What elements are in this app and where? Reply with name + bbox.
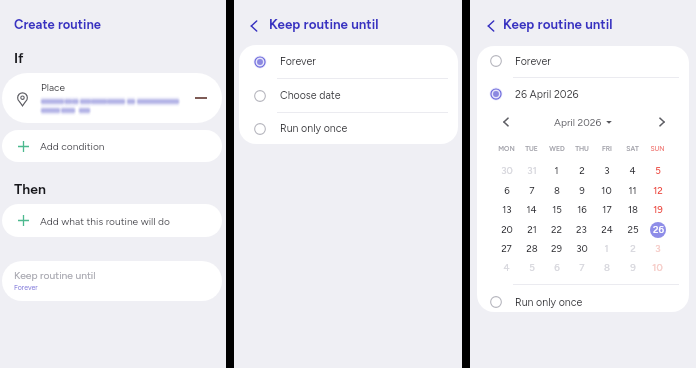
staticText: 26 April 2026 xyxy=(515,88,579,101)
staticText: FRI xyxy=(602,145,612,153)
staticText: 23 xyxy=(576,224,587,236)
staticText: 8 xyxy=(604,262,610,274)
staticText: THU xyxy=(575,145,589,153)
staticText: 10 xyxy=(601,185,612,197)
button[interactable]: 26 April 2026 xyxy=(477,78,689,110)
button[interactable]: Forever xyxy=(239,45,458,78)
staticText: Keep routine until xyxy=(269,16,379,32)
staticText: Keep routine until xyxy=(14,269,96,281)
staticText: 5 xyxy=(655,165,661,177)
staticText: 6 xyxy=(504,185,510,197)
staticText: Run only once xyxy=(515,296,583,309)
staticText: Add condition xyxy=(40,140,105,152)
button[interactable]: Previous month xyxy=(499,115,513,129)
staticText: 7 xyxy=(529,185,535,197)
staticText: 6 xyxy=(554,262,560,274)
button[interactable]: Back xyxy=(482,17,500,35)
staticText: 17 xyxy=(602,204,612,216)
staticText: 8 xyxy=(554,185,560,197)
staticText: Keep routine until xyxy=(503,16,613,32)
staticText: 4 xyxy=(503,262,510,274)
staticText: 22 xyxy=(551,224,562,236)
staticText: 4 xyxy=(629,165,636,177)
staticText: 11 xyxy=(628,185,637,197)
staticText: 27 xyxy=(501,243,512,255)
staticText: Then xyxy=(14,181,46,198)
staticText: Forever xyxy=(14,283,38,291)
staticText: 24 xyxy=(601,224,613,236)
staticText: WED xyxy=(549,145,565,153)
staticText: 26 xyxy=(653,224,664,236)
button[interactable]: Choose date xyxy=(239,79,458,112)
staticText: 15 xyxy=(552,204,562,216)
staticText: 1 xyxy=(554,165,559,177)
button[interactable]: Next month xyxy=(655,115,669,129)
staticText: Forever xyxy=(515,55,551,68)
button[interactable]: Run only once xyxy=(477,288,689,312)
button[interactable]: Add condition xyxy=(2,130,222,162)
staticText: 29 xyxy=(551,243,562,255)
button[interactable]: Back xyxy=(245,17,263,35)
staticText: Place xyxy=(41,81,65,93)
staticText: 5 xyxy=(529,262,535,274)
staticText: Forever xyxy=(280,55,316,68)
staticText: 2 xyxy=(630,243,636,255)
staticText: 3 xyxy=(604,165,610,177)
staticText: 13 xyxy=(502,204,512,216)
staticText: 16 xyxy=(577,204,587,216)
staticText: 31 xyxy=(527,165,537,177)
button[interactable]: Remove condition xyxy=(191,88,211,108)
button[interactable]: Forever xyxy=(477,46,689,76)
button[interactable]: Add what this routine will do xyxy=(2,204,222,237)
button[interactable]: Place xyxy=(2,73,222,123)
staticText: April 2026 xyxy=(554,116,602,128)
staticText: 9 xyxy=(630,262,636,274)
button[interactable]: Run only once xyxy=(239,113,458,144)
staticText: Run only once xyxy=(280,122,348,135)
staticText: MON xyxy=(498,145,515,153)
staticText: 21 xyxy=(527,224,537,236)
staticText: 2 xyxy=(579,165,585,177)
staticText: If xyxy=(14,50,24,67)
staticText: 25 xyxy=(627,224,639,236)
staticText: 10 xyxy=(652,262,663,274)
staticText: 3 xyxy=(655,243,661,255)
staticText: TUE xyxy=(525,145,538,153)
staticText: 20 xyxy=(501,224,513,236)
staticText: 18 xyxy=(628,204,638,216)
staticText: 30 xyxy=(576,243,588,255)
staticText: 7 xyxy=(579,262,585,274)
staticText: SAT xyxy=(626,145,639,153)
staticText: 1 xyxy=(604,243,609,255)
staticText: Create routine xyxy=(14,17,101,33)
button[interactable]: April 2026 xyxy=(554,116,612,128)
staticText: 30 xyxy=(501,165,513,177)
staticText: 28 xyxy=(526,243,538,255)
staticText: 14 xyxy=(526,204,537,216)
button[interactable]: Keep routine until xyxy=(2,261,222,301)
staticText: SUN xyxy=(650,145,665,153)
staticText: Add what this routine will do xyxy=(40,215,170,227)
staticText: 19 xyxy=(653,204,663,216)
staticText: Choose date xyxy=(280,89,341,102)
staticText: 9 xyxy=(579,185,585,197)
staticText: 12 xyxy=(653,185,663,197)
